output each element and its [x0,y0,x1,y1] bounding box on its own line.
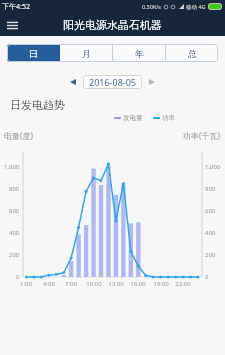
staticText: 200 [205,251,216,259]
staticText: 日发电趋势 [10,98,65,112]
staticText: 日 [29,48,38,59]
staticText: 0.50K/s [142,3,161,10]
staticText: 月 [82,48,91,59]
staticText: 800 [205,185,216,193]
staticText: 19:00 [153,280,169,288]
staticText: 22:00 [175,280,191,288]
button[interactable]: Next day [145,75,159,89]
staticText: 4:00 [43,280,55,288]
staticText: 移动 4G [186,3,206,11]
staticText: 16:00 [130,280,146,288]
button[interactable]: 总 [166,44,218,62]
staticText: 1,000 [205,163,221,171]
staticText: 200 [9,251,20,259]
staticText: 400 [205,229,216,237]
staticText: 600 [9,207,20,215]
staticText: 阳光电源水晶石机器 [63,18,162,32]
staticText: 13:00 [108,280,124,288]
staticText: 400 [9,229,20,237]
staticText: 电量(度) [4,130,33,141]
staticText: 总 [188,48,197,59]
staticText: 1,000 [4,163,20,171]
button[interactable]: 月 [60,44,112,62]
staticText: 0 [16,273,20,281]
staticText: 发电量 [123,114,143,122]
staticText: 600 [205,207,216,215]
staticText: 功率(千瓦) [183,130,220,141]
staticText: 7:00 [65,280,77,288]
staticText: 下午4:52 [2,2,30,12]
button[interactable]: Menu [3,16,21,34]
button[interactable]: 日 [7,44,59,62]
button[interactable]: Previous day [66,75,80,89]
button[interactable]: 2016-08-05 [83,75,142,89]
staticText: 800 [9,185,20,193]
button[interactable]: 年 [113,44,165,62]
staticText: 功率 [162,114,175,122]
staticText: 1:00 [20,280,32,288]
staticText: 年 [135,48,144,59]
staticText: 2016-08-05 [89,76,136,88]
staticText: 0 [205,273,209,281]
staticText: 10:00 [86,280,102,288]
